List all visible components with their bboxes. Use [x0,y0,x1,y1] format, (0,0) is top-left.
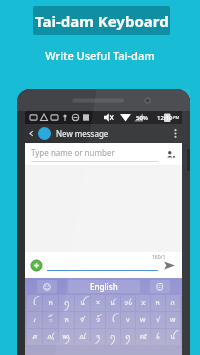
staticText: × [96,298,101,308]
button[interactable]: v [121,312,135,328]
staticText: ꪆ [64,296,70,311]
button[interactable] [37,280,57,293]
staticText: v [126,315,130,325]
staticText: ꪫꪰ [96,313,101,328]
button[interactable]: ꪉ [151,329,165,345]
staticText: ꪀ [48,296,54,311]
button[interactable]: ꪂ [43,329,58,345]
staticText: ꪁ [32,330,38,345]
staticText: ꪙ [110,296,116,311]
button[interactable]: ꪇ [121,329,135,345]
button[interactable]: w [166,312,180,328]
staticText: Tai-dam Keyboard [35,11,169,31]
button[interactable]: Back [25,127,38,140]
button[interactable]: ꪎ [136,295,150,311]
button[interactable]: ꪆ [59,295,74,311]
button[interactable]: ꪀ [151,295,165,311]
button[interactable]: ꪶ [27,295,42,311]
staticText: ꪀ [155,296,161,311]
button[interactable]: ꪀ [43,295,58,311]
staticText: ꪊ [80,296,86,311]
staticText: ꪹ [33,313,37,328]
button[interactable]: Send [162,258,177,273]
button[interactable]: ꪶ [106,312,120,328]
button[interactable]: ꪃ [59,329,74,345]
staticText: 160/1 [152,254,166,261]
button[interactable]: ꪒ [166,295,180,311]
button[interactable]: Add contact [164,148,176,160]
button[interactable] [150,280,170,293]
staticText: ꪶ [112,313,115,328]
button[interactable]: ꪫꪰ [91,312,105,328]
staticText: 12:19 [157,114,173,122]
button[interactable]: Attach [30,259,42,271]
staticText: PM [173,115,180,120]
staticText: 50% [136,114,148,122]
button[interactable]: Tai-dam Keyboard [33,6,170,35]
staticText: ꪎ [141,296,146,311]
staticText: Type name or number [31,147,115,158]
button[interactable]: ꪥ [75,312,90,328]
staticText: ꪆ [110,330,116,345]
staticText: ꪶ [33,296,36,311]
staticText: √ [156,316,161,324]
staticText: ꪊ [170,330,176,345]
staticText: English [90,281,118,292]
staticText: ꪒ [170,296,176,311]
button[interactable]: More options [168,124,182,143]
button[interactable]: Contact [38,127,51,140]
staticText: New message [56,128,109,139]
staticText: ꪫꪉ [124,296,133,311]
button[interactable]: ꪁ [27,329,42,345]
button[interactable]: ꪊ [166,329,180,345]
staticText: w [170,315,176,325]
button[interactable]: ꪅ [91,329,105,345]
staticText: Write Useful Tai-dam [45,48,155,63]
staticText: ꪃ [62,330,71,345]
staticText: ꪥ [80,313,85,328]
staticText: ꪇ [125,330,131,345]
button[interactable]: √ [151,312,165,328]
button[interactable]: ꪄ [75,329,90,345]
button[interactable]: ꪊ [75,295,90,311]
button[interactable]: w [136,312,150,328]
staticText: ꪂ [47,330,54,345]
button[interactable]: ꪸ [43,312,58,328]
staticText: ꪀ [64,313,70,328]
button[interactable]: × [91,295,105,311]
button[interactable]: English [68,280,140,293]
staticText: w [140,315,146,325]
button[interactable]: ꪈ [136,329,150,345]
staticText: ꪉ [156,330,160,345]
button[interactable]: ꪀ [59,312,74,328]
button[interactable]: ꪆ [106,329,120,345]
button[interactable]: ꪹ [27,312,42,328]
button[interactable]: ꪙ [106,295,120,311]
button[interactable]: ꪫꪉ [121,295,135,311]
staticText: ꪸ [49,313,53,328]
staticText: ꪈ [139,330,148,345]
staticText: ꪅ [96,330,101,345]
staticText: ꪄ [79,330,86,345]
